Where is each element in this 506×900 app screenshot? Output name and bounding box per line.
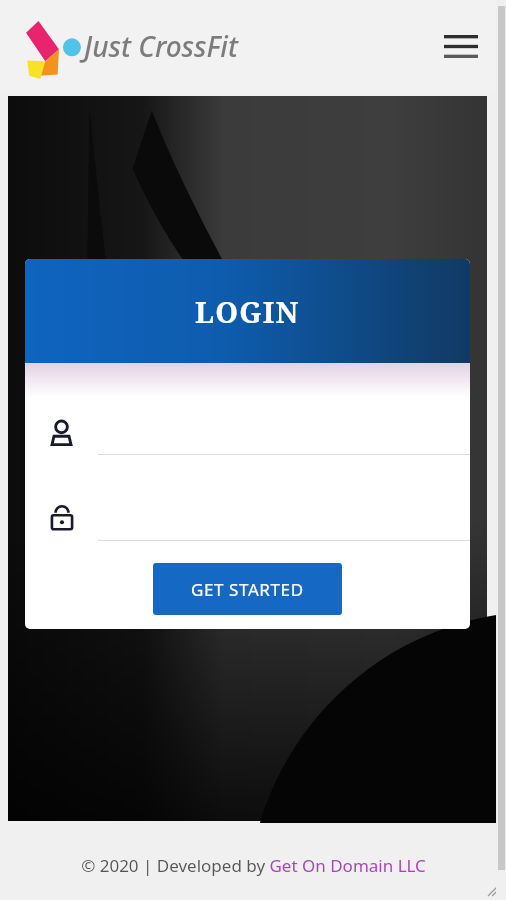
button[interactable]: Just CrossFit — [18, 13, 238, 79]
button[interactable] — [25, 495, 470, 541]
button[interactable]: GET STARTED — [153, 563, 342, 615]
staticText: Just CrossFit — [84, 27, 238, 65]
staticText: LOGIN — [195, 292, 300, 331]
staticText: GET STARTED — [191, 578, 304, 601]
button[interactable] — [25, 409, 470, 455]
button[interactable]: © 2020 | Developed by Get On Domain LLC — [81, 854, 426, 877]
button[interactable]: Open navigation menu — [438, 23, 484, 69]
